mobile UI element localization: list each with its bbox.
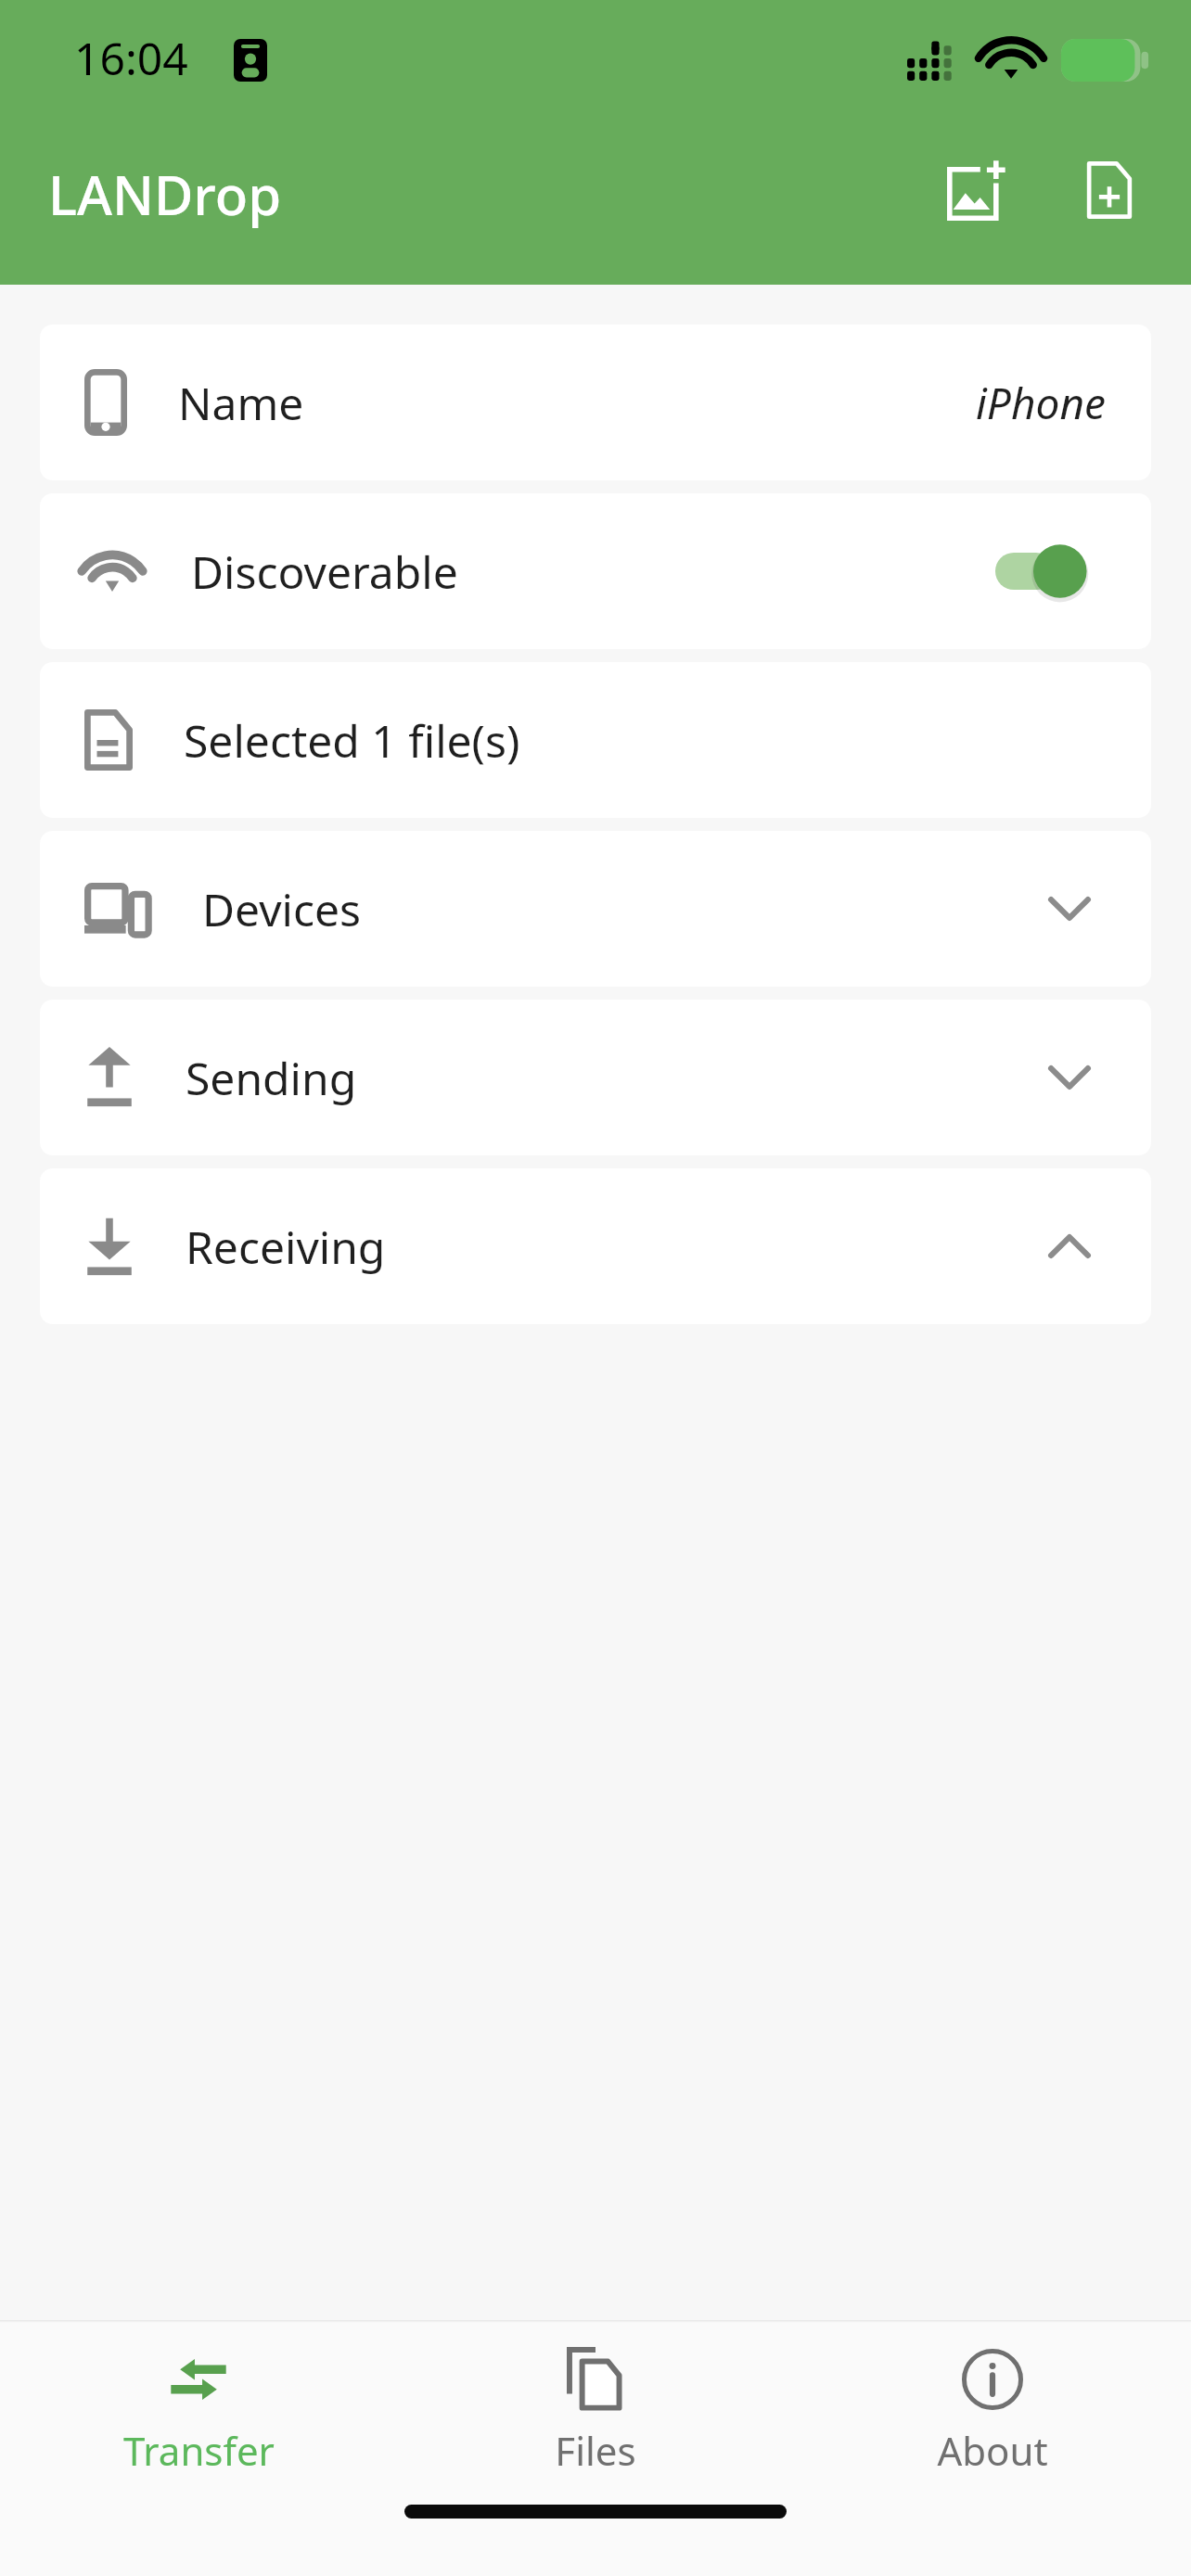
- staticText: Selected 1 file(s): [184, 710, 520, 771]
- staticText: Transfer: [123, 2424, 275, 2477]
- staticText: About: [937, 2424, 1048, 2477]
- button[interactable]: Add file: [1061, 142, 1158, 238]
- staticText: Discoverable: [191, 542, 458, 602]
- button[interactable]: Collapse: [1032, 1209, 1107, 1283]
- staticText: Sending: [186, 1048, 357, 1108]
- staticText: iPhone: [976, 374, 1107, 432]
- button[interactable]: Sending: [40, 1000, 1151, 1155]
- button[interactable]: Name: [40, 325, 1151, 480]
- button[interactable]: Discoverable: [40, 493, 1151, 649]
- button[interactable]: [995, 534, 1107, 608]
- button[interactable]: Files: [397, 2323, 794, 2499]
- staticText: Receiving: [186, 1217, 386, 1277]
- button[interactable]: About: [794, 2323, 1191, 2499]
- button[interactable]: Devices: [40, 831, 1151, 987]
- button[interactable]: Selected 1 file(s): [40, 662, 1151, 818]
- staticText: Name: [178, 373, 304, 433]
- staticText: 16:04: [74, 28, 188, 88]
- staticText: LANDrop: [48, 158, 282, 231]
- staticText: Devices: [202, 879, 362, 939]
- button[interactable]: Transfer: [0, 2323, 397, 2499]
- button[interactable]: Receiving: [40, 1168, 1151, 1324]
- button[interactable]: Expand: [1032, 872, 1107, 946]
- button[interactable]: Add image: [929, 142, 1026, 238]
- button[interactable]: Expand: [1032, 1040, 1107, 1115]
- staticText: Files: [555, 2424, 636, 2477]
